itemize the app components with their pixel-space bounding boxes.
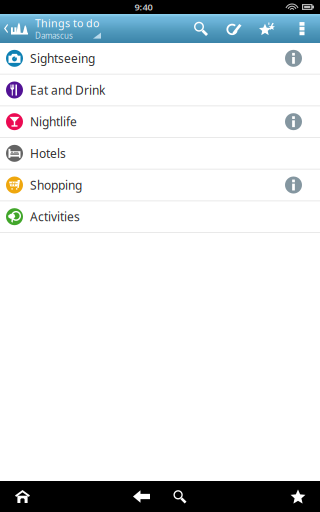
button[interactable]: More options [284, 14, 320, 43]
button[interactable]: Back [122, 481, 160, 512]
staticText: Activities [30, 209, 80, 225]
button[interactable]: Search [184, 14, 217, 43]
button[interactable]: Hotels [0, 138, 320, 170]
staticText: Sightseeing [30, 50, 95, 66]
staticText: 9:40 [134, 1, 152, 13]
button[interactable]: Favorites [276, 481, 320, 512]
staticText: Nightlife [30, 114, 77, 130]
staticText: Hotels [30, 145, 66, 161]
staticText: Shopping [30, 177, 82, 193]
button[interactable]: Favorites [250, 14, 284, 43]
button[interactable]: Nightlife [0, 106, 320, 138]
button[interactable]: Eat and Drink [0, 75, 320, 106]
button[interactable]: Home [0, 481, 45, 512]
staticText: Things to do [35, 16, 99, 30]
button[interactable]: Refresh [217, 14, 250, 43]
button[interactable]: Activities [0, 201, 320, 233]
staticText: Eat and Drink [30, 82, 105, 98]
button[interactable]: Shopping [0, 170, 320, 201]
staticText: Damascus [35, 30, 73, 41]
button[interactable]: Search [160, 481, 198, 512]
button[interactable]: Things to do [0, 16, 101, 41]
button[interactable]: Sightseeing [0, 43, 320, 75]
